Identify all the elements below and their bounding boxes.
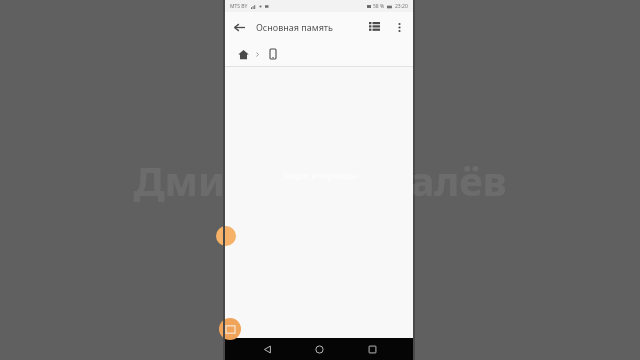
staticText: MTS BY	[230, 3, 248, 10]
button[interactable]: Back	[225, 13, 253, 41]
button[interactable]: Device storage	[264, 45, 282, 63]
staticText: 58 %	[373, 3, 385, 10]
button[interactable]: Back	[256, 338, 278, 360]
button[interactable]: Recent apps	[361, 338, 383, 360]
button[interactable]: Home	[308, 338, 330, 360]
staticText: 23:20	[395, 3, 408, 10]
button[interactable]: Camera	[219, 318, 241, 340]
staticText: Основная память	[256, 21, 361, 33]
staticText: Дмитрий Ковалёв	[0, 153, 640, 207]
button[interactable]: More options	[387, 15, 411, 39]
button[interactable]: View as list	[361, 14, 387, 40]
button[interactable]: Add	[216, 226, 236, 246]
button[interactable]: Home	[234, 45, 252, 63]
